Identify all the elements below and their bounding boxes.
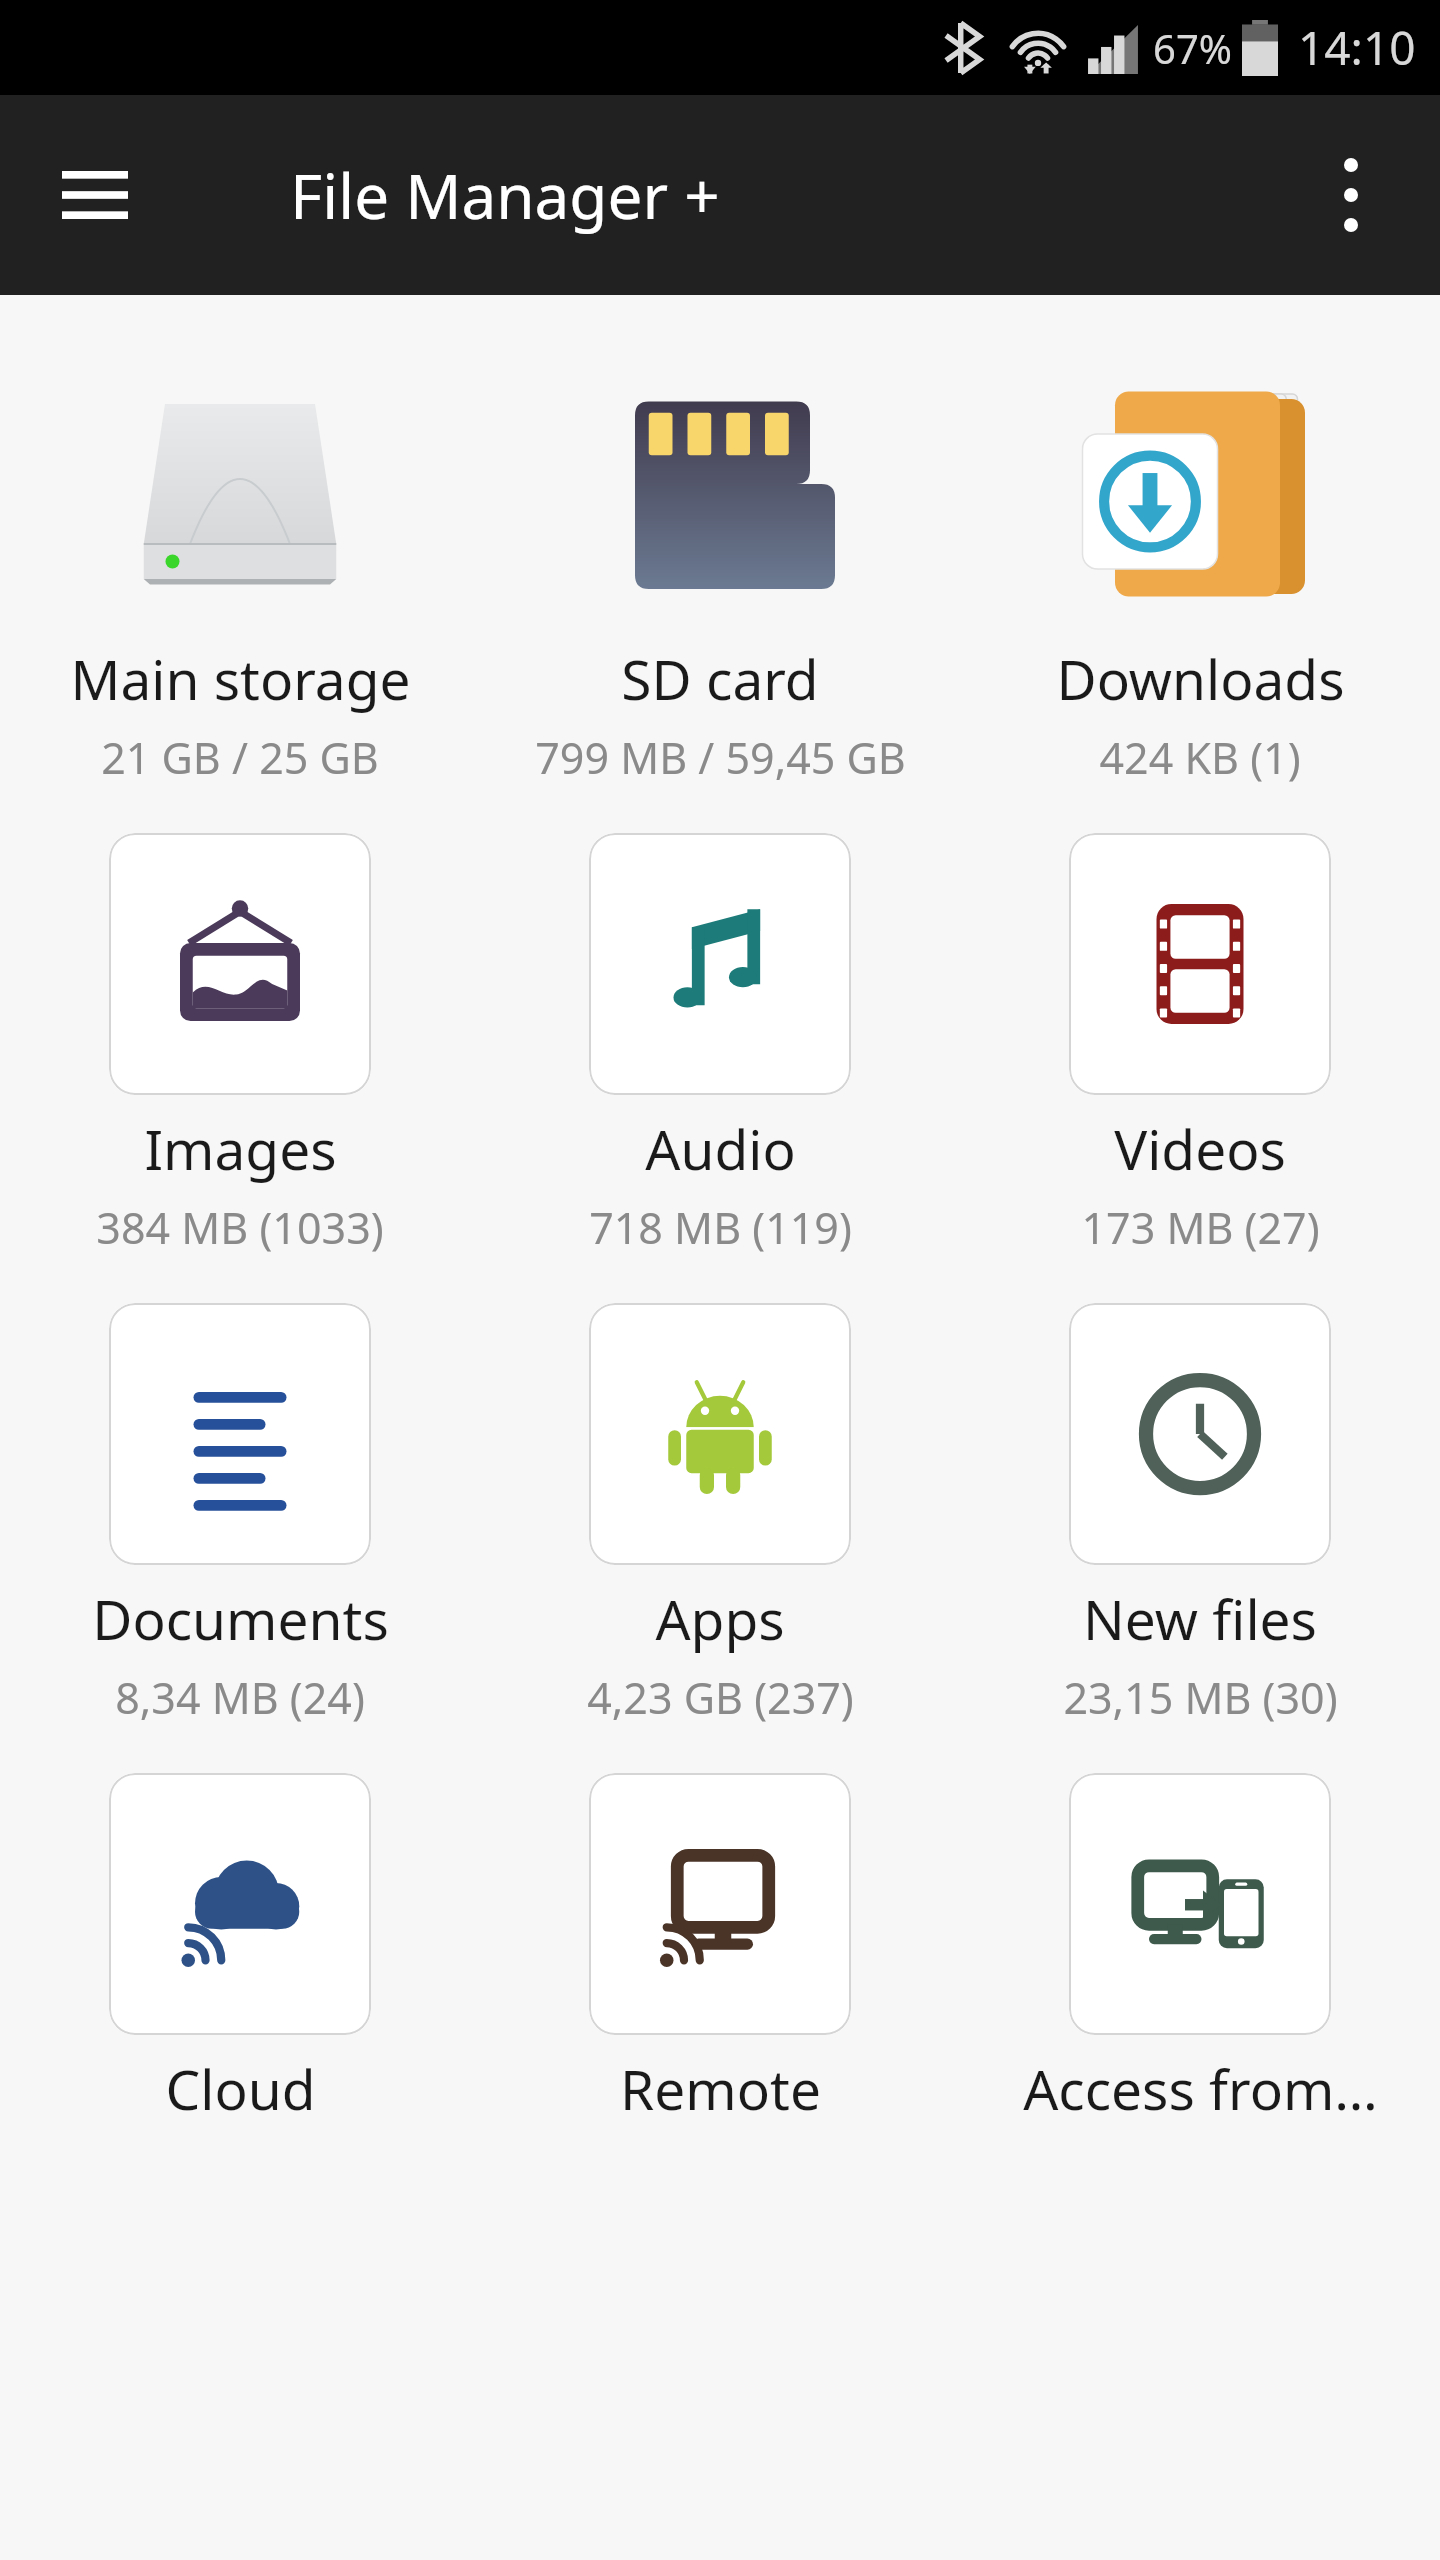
staticText: File Manager + xyxy=(290,153,720,237)
staticText: Apps xyxy=(655,1581,785,1656)
staticText: Main storage xyxy=(70,641,411,716)
staticText: 8,34 MB (24) xyxy=(115,1668,365,1727)
staticText: New files xyxy=(1083,1581,1317,1656)
button[interactable]: SD card xyxy=(480,357,960,793)
staticText: 23,15 MB (30) xyxy=(1063,1668,1338,1727)
staticText: Access from… xyxy=(1023,2051,1378,2126)
button[interactable]: New files xyxy=(960,1297,1440,1733)
button[interactable]: Apps xyxy=(480,1297,960,1733)
button[interactable]: Main storage xyxy=(0,357,480,793)
staticText: 384 MB (1033) xyxy=(96,1198,384,1257)
staticText: SD card xyxy=(621,641,819,716)
button[interactable]: Audio xyxy=(480,827,960,1263)
button[interactable]: Access from… xyxy=(960,1767,1440,2132)
button[interactable]: More options xyxy=(1296,140,1406,250)
staticText: 67% xyxy=(1153,21,1232,75)
staticText: 14:10 xyxy=(1298,16,1416,79)
button[interactable]: Documents xyxy=(0,1297,480,1733)
staticText: 799 MB / 59,45 GB xyxy=(535,728,906,787)
staticText: Cloud xyxy=(165,2051,316,2126)
button[interactable]: Cloud xyxy=(0,1767,480,2132)
staticText: 424 KB (1) xyxy=(1099,728,1301,787)
staticText: 4,23 GB (237) xyxy=(587,1668,854,1727)
staticText: Videos xyxy=(1114,1111,1286,1186)
button[interactable]: Videos xyxy=(960,827,1440,1263)
staticText: 21 GB / 25 GB xyxy=(101,728,379,787)
staticText: Documents xyxy=(92,1581,389,1656)
button[interactable]: Open navigation drawer xyxy=(40,140,150,250)
staticText: 718 MB (119) xyxy=(589,1198,852,1257)
button[interactable]: Remote xyxy=(480,1767,960,2132)
button[interactable]: Downloads xyxy=(960,357,1440,793)
staticText: Images xyxy=(144,1111,337,1186)
staticText: 173 MB (27) xyxy=(1081,1198,1320,1257)
button[interactable]: Images xyxy=(0,827,480,1263)
staticText: Audio xyxy=(645,1111,796,1186)
staticText: Remote xyxy=(620,2051,821,2126)
staticText: Downloads xyxy=(1056,641,1345,716)
